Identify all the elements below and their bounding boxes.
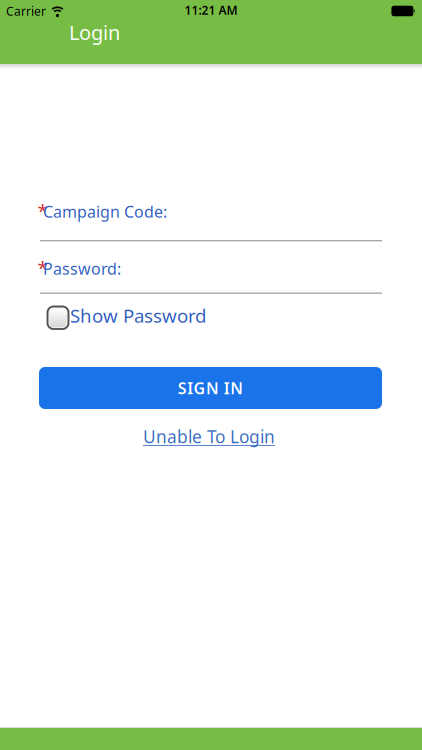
button[interactable]: Password [38,258,382,294]
staticText: 11:21 AM [184,2,237,18]
button[interactable]: SIGN IN [39,367,382,409]
staticText: Show Password [70,303,206,328]
button[interactable]: Campaign Code [38,202,382,242]
button[interactable]: Show Password [47,306,206,331]
staticText: Unable To Login [143,425,275,448]
staticText: Password: [43,258,121,279]
button[interactable]: Unable To Login [143,425,275,448]
staticText: Carrier [6,3,46,19]
staticText: SIGN IN [178,377,243,399]
staticText: Login [69,19,120,46]
staticText: * [38,255,48,280]
staticText: Campaign Code: [43,201,167,222]
staticText: * [38,198,48,223]
